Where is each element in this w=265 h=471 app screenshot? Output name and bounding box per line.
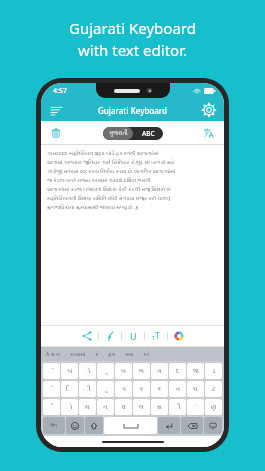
button[interactable]: Hide keyboard xyxy=(204,417,222,434)
button[interactable]: ુ xyxy=(97,381,114,397)
staticText: ૂ xyxy=(103,368,108,374)
staticText: ગુજરાતી xyxy=(109,131,128,137)
staticText: બ xyxy=(66,367,73,375)
button[interactable]: ૅ xyxy=(43,363,60,379)
button[interactable]: Menu xyxy=(48,102,64,118)
button[interactable]: અમદાવાદ મ્યુનિસિપલ શુદ્ધ બોર્ડ હકકતની શા… xyxy=(47,149,218,321)
button[interactable]: ં xyxy=(187,399,204,415)
button[interactable]: ે xyxy=(43,381,60,397)
button[interactable]: કરે xyxy=(142,352,151,357)
staticText: Gujarati Keyboard xyxy=(69,18,196,38)
staticText: વ xyxy=(122,404,126,410)
button[interactable]: ચ xyxy=(187,381,204,397)
button[interactable]: Share xyxy=(76,326,98,346)
button[interactable]: ી xyxy=(79,381,96,397)
button[interactable]: ટ xyxy=(205,381,222,397)
button[interactable]: Emoji xyxy=(66,417,84,434)
staticText: કુલ xyxy=(108,352,116,357)
staticText: શાળાઓમાં કરજ બજાવતા શિક્ષકો પૈકી કેટલી મ… xyxy=(47,185,171,192)
button[interactable]: જ xyxy=(187,363,204,379)
staticText: U xyxy=(130,330,137,342)
button[interactable]: બ xyxy=(61,363,78,379)
button[interactable]: ત xyxy=(169,381,186,397)
button[interactable]: વ xyxy=(115,399,132,415)
button[interactable]: કરવામાં xyxy=(69,352,87,357)
button[interactable]: િ xyxy=(61,381,78,397)
button[interactable]: Underline xyxy=(122,326,144,346)
staticText: ૅ xyxy=(49,368,54,374)
button[interactable]: કુલ xyxy=(107,352,117,357)
button[interactable]: ો xyxy=(61,399,78,415)
staticText: ન xyxy=(103,404,108,410)
staticText: ભ xyxy=(139,368,144,374)
staticText: with text editor. xyxy=(78,40,187,60)
button[interactable]: પ xyxy=(115,381,132,397)
staticText: ગ xyxy=(157,368,162,374)
button[interactable]: લ xyxy=(133,399,150,415)
staticText: ક xyxy=(157,386,162,392)
button[interactable]: Enter xyxy=(158,417,180,434)
button[interactable]: ૂ xyxy=(97,363,114,379)
staticText: ABC xyxy=(142,129,155,138)
button[interactable]: ગુજરાતી xyxy=(103,127,133,140)
button[interactable]: ગ xyxy=(151,363,168,379)
button[interactable]: Brush xyxy=(99,326,121,346)
button[interactable]: ડ xyxy=(205,363,222,379)
staticText: પ xyxy=(122,386,126,392)
staticText: િ xyxy=(66,386,73,392)
button[interactable]: Clear text xyxy=(48,125,64,141)
staticText: ે xyxy=(49,386,54,392)
button[interactable]: ભ xyxy=(133,363,150,379)
button[interactable]: ABC xyxy=(133,127,163,140)
staticText: 4:57 xyxy=(53,86,67,96)
button[interactable]: Settings xyxy=(201,102,217,118)
staticText: T xyxy=(152,335,155,342)
button[interactable]: Space xyxy=(104,417,157,434)
staticText: Gujarati Keyboard xyxy=(98,105,167,116)
staticText: ો xyxy=(66,404,73,410)
staticText: કે xyxy=(95,352,99,357)
staticText: ચ xyxy=(193,386,198,392)
button[interactable]: A ≡ ખ xyxy=(45,351,62,358)
staticText: ડ xyxy=(212,368,216,374)
staticText: ૉ xyxy=(84,368,91,374)
staticText: જ કેટલ બન્ને રાજ્ય કરવામાં આવશે.દક્ષિણ ભ… xyxy=(47,176,151,183)
button[interactable]: ૈ xyxy=(43,399,60,415)
button[interactable]: Backspace xyxy=(181,417,203,434)
staticText: જ xyxy=(193,368,199,374)
staticText: ૌ xyxy=(174,404,181,410)
staticText: T xyxy=(155,330,160,342)
button[interactable]: Translate xyxy=(201,125,217,141)
staticText: ર xyxy=(140,386,144,392)
staticText: ટ xyxy=(212,386,216,392)
button[interactable]: કે xyxy=(94,352,100,357)
staticText: ી xyxy=(84,386,91,392)
button[interactable]: ર xyxy=(133,381,150,397)
button[interactable]: સ xyxy=(151,399,168,415)
button[interactable]: Symbols xyxy=(43,417,65,434)
button[interactable]: Shift xyxy=(85,417,103,434)
staticText: મૂળભાવિકોના મુકવામાંથી જાણવા મળ્યું છે. … xyxy=(47,203,139,210)
button[interactable]: ણ xyxy=(205,399,222,415)
staticText: લ xyxy=(139,404,144,410)
staticText: અંગ્રેજી માધ્યમ શરૂ કરવા નિર્ણય કરવા છે.… xyxy=(47,167,176,174)
button[interactable]: મ xyxy=(79,399,96,415)
staticText: મ્યુનિસિપલની શિક્ષણ સમિતિ નોંધી મેળવવા મ… xyxy=(47,194,171,201)
button[interactable]: ક xyxy=(151,381,168,397)
staticText: શાળામાં અભ્યાસ જુનિયર અને સિનિયર કે.જી. … xyxy=(47,158,175,165)
staticText: દ xyxy=(176,368,180,374)
button[interactable]: દ xyxy=(169,363,186,379)
staticText: ં xyxy=(193,404,198,410)
staticText: ુ xyxy=(103,386,108,392)
button[interactable]: Text size xyxy=(145,326,167,346)
staticText: કરવામાં xyxy=(70,352,86,357)
button[interactable]: કામ xyxy=(124,352,135,357)
staticText: ૈ xyxy=(49,404,54,410)
button[interactable]: ૌ xyxy=(169,399,186,415)
staticText: A ≡ ખ xyxy=(46,351,61,358)
staticText: !#૧ xyxy=(50,422,58,429)
button[interactable]: બ xyxy=(115,363,132,379)
button[interactable]: Text color xyxy=(168,326,190,346)
button[interactable]: ન xyxy=(97,399,114,415)
button[interactable]: ૉ xyxy=(79,363,96,379)
